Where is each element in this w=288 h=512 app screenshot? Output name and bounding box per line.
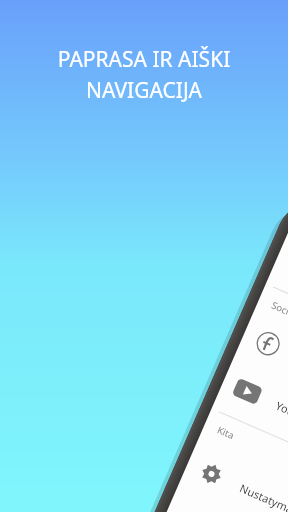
button[interactable] <box>0 0 288 512</box>
